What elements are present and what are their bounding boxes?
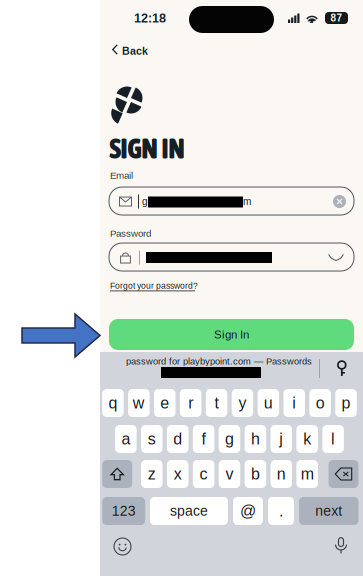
staticText: b	[251, 465, 260, 483]
staticText: f	[202, 430, 206, 448]
button[interactable]: b	[245, 460, 266, 488]
staticText: p	[341, 394, 350, 412]
staticText: e	[160, 394, 169, 412]
staticText: r	[188, 394, 193, 412]
button[interactable]: Passwords	[336, 360, 348, 377]
staticText: 12:18	[134, 11, 166, 25]
button[interactable]: Dictation	[334, 537, 349, 555]
button[interactable]: f	[193, 425, 214, 453]
staticText: space	[170, 503, 208, 519]
staticText: w	[133, 394, 145, 412]
button[interactable]: Emoji	[113, 537, 132, 556]
staticText: 123	[112, 503, 136, 519]
staticText: Email	[110, 170, 133, 181]
staticText: j	[279, 430, 283, 448]
button[interactable]: z	[141, 460, 163, 488]
button[interactable]: Forgot your password?	[110, 281, 198, 294]
button[interactable]: y	[232, 389, 253, 417]
staticText: next	[315, 503, 342, 519]
button[interactable]	[109, 243, 354, 271]
staticText: Password	[110, 228, 151, 239]
button[interactable]: a	[115, 425, 137, 453]
staticText: a	[121, 430, 130, 448]
staticText: @	[240, 502, 256, 520]
staticText: s	[148, 430, 156, 448]
button[interactable]: r	[180, 389, 201, 417]
staticText: k	[303, 430, 311, 448]
button[interactable]: 123	[102, 497, 145, 525]
staticText: d	[173, 430, 182, 448]
button[interactable]: w	[128, 389, 150, 417]
button[interactable]: password for playbypoint.com — Passwords	[100, 352, 314, 385]
staticText: u	[264, 394, 273, 412]
button[interactable]: next	[299, 497, 358, 525]
staticText: z	[148, 465, 156, 483]
staticText: password for playbypoint.com — Passwords	[126, 356, 312, 366]
staticText: .	[279, 502, 283, 520]
staticText: h	[251, 430, 260, 448]
button[interactable]: t	[206, 389, 227, 417]
staticText: l	[331, 430, 335, 448]
button[interactable]: Delete	[328, 460, 358, 488]
staticText: g	[225, 430, 234, 448]
staticText: v	[225, 465, 233, 483]
staticText: t	[215, 394, 219, 412]
button[interactable]: q	[102, 389, 124, 417]
staticText: 87	[330, 12, 342, 24]
button[interactable]: o	[309, 389, 331, 417]
staticText: Sign In	[214, 328, 249, 341]
staticText: g	[142, 196, 148, 207]
button[interactable]: e	[154, 389, 175, 417]
staticText: i	[292, 394, 296, 412]
staticText: x	[174, 465, 182, 483]
button[interactable]: p	[335, 389, 357, 417]
button[interactable]: m	[296, 460, 318, 488]
staticText: q	[108, 394, 117, 412]
button[interactable]: space	[150, 497, 228, 525]
button[interactable]: v	[219, 460, 240, 488]
staticText: m	[301, 465, 314, 483]
button[interactable]: Back	[100, 39, 156, 61]
button[interactable]: d	[167, 425, 188, 453]
button[interactable]: h	[245, 425, 266, 453]
staticText: Forgot your password?	[110, 281, 198, 290]
button[interactable]: g	[219, 425, 240, 453]
staticText: y	[238, 394, 246, 412]
button[interactable]: u	[258, 389, 279, 417]
button[interactable]: n	[271, 460, 292, 488]
staticText: m	[243, 196, 251, 207]
button[interactable]: x	[167, 460, 188, 488]
button[interactable]: Shift	[102, 460, 132, 488]
button[interactable]: i	[283, 389, 305, 417]
staticText: c	[200, 465, 208, 483]
button[interactable]: Sign In	[109, 319, 354, 350]
staticText: SIGN IN	[109, 133, 184, 164]
staticText: o	[316, 394, 325, 412]
button[interactable]: g	[109, 187, 354, 215]
button[interactable]: @	[233, 497, 263, 525]
button[interactable]: .	[268, 497, 294, 525]
staticText: Back	[122, 45, 148, 57]
staticText: n	[277, 465, 286, 483]
button[interactable]: k	[296, 425, 318, 453]
button[interactable]: l	[322, 425, 344, 453]
button[interactable]: c	[193, 460, 214, 488]
button[interactable]: j	[270, 425, 292, 453]
button[interactable]: s	[141, 425, 163, 453]
